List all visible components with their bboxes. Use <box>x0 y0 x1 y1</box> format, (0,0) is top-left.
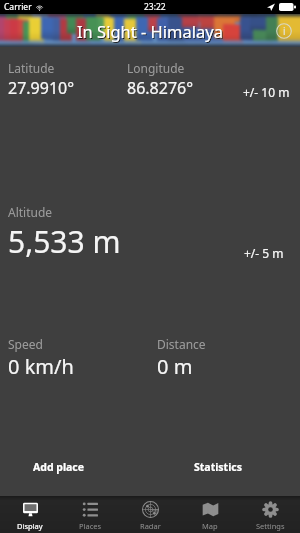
staticText: Longitude <box>127 60 185 76</box>
button[interactable]: Places <box>60 496 120 533</box>
staticText: Settings <box>256 521 285 531</box>
button[interactable]: Radar <box>120 496 180 533</box>
staticText: 0 km/h <box>8 353 74 380</box>
staticText: Altitude <box>8 204 53 220</box>
button[interactable]: Statistics <box>155 453 281 481</box>
staticText: Latitude <box>8 60 55 76</box>
button[interactable]: Map <box>180 496 240 533</box>
staticText: 23:22 <box>144 1 166 13</box>
staticText: Add place <box>33 460 85 474</box>
staticText: Places <box>79 521 102 531</box>
staticText: Statistics <box>194 460 242 474</box>
staticText: Carrier <box>4 1 32 13</box>
staticText: Distance <box>157 336 206 352</box>
button[interactable]: Add place <box>0 453 118 481</box>
staticText: Speed <box>8 336 43 352</box>
staticText: +/- 10 m <box>243 84 290 100</box>
staticText: 0 m <box>157 353 193 380</box>
staticText: 27.9910° <box>8 77 75 99</box>
button[interactable]: Settings <box>240 496 300 533</box>
staticText: 5,533 m <box>8 221 121 262</box>
staticText: In Sight - Himalaya <box>78 21 224 43</box>
staticText: +/- 5 m <box>244 245 284 261</box>
staticText: In Sight - Himalaya <box>77 20 223 42</box>
staticText: Radar <box>140 521 161 531</box>
staticText: Map <box>202 521 218 531</box>
button[interactable]: Display <box>0 496 60 533</box>
staticText: i <box>283 24 286 38</box>
staticText: Display <box>17 521 43 531</box>
staticText: 86.8276° <box>127 77 194 99</box>
button[interactable]: Info <box>276 23 292 39</box>
